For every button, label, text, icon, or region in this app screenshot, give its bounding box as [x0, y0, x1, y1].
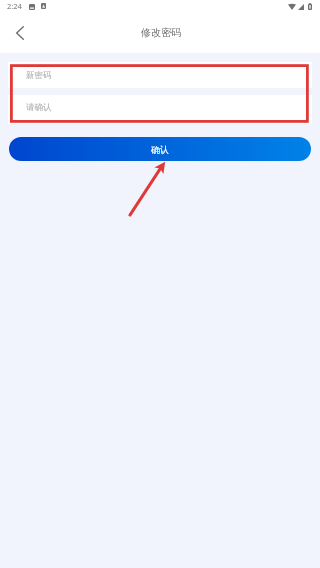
- button[interactable]: 请确认: [8, 95, 312, 119]
- staticText: 修改密码: [141, 26, 181, 39]
- button[interactable]: 确认: [9, 137, 311, 161]
- staticText: 请确认: [26, 102, 52, 113]
- button[interactable]: Back: [7, 20, 33, 46]
- staticText: 2:24: [7, 1, 22, 11]
- staticText: 确认: [151, 144, 169, 155]
- button[interactable]: 新密码: [8, 62, 312, 88]
- staticText: 新密码: [26, 70, 52, 81]
